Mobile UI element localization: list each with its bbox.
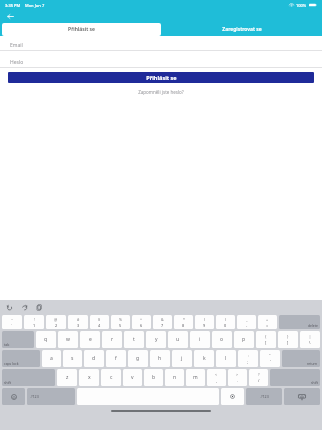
button[interactable]: @ [46, 315, 66, 329]
button[interactable]: t [124, 331, 144, 348]
button[interactable]: Hide keyboard [284, 388, 320, 405]
staticText: p [242, 336, 246, 343]
staticText: ( [204, 317, 206, 322]
staticText: o [220, 336, 224, 343]
staticText: Email [10, 42, 23, 49]
button[interactable]: _ [237, 315, 256, 329]
staticText: # [77, 317, 80, 322]
button[interactable]: z [57, 369, 77, 386]
button[interactable]: s [63, 350, 82, 367]
button[interactable]: j [172, 350, 192, 367]
staticText: c [110, 374, 113, 381]
button[interactable]: Undo [5, 303, 14, 312]
staticText: ] [287, 340, 289, 345]
button[interactable]: h [150, 350, 170, 367]
button[interactable]: q [36, 331, 56, 348]
staticText: Zaregistrovat se [222, 26, 262, 33]
button[interactable]: m [186, 369, 205, 386]
staticText: b [152, 374, 156, 381]
staticText: 4 [98, 323, 101, 328]
button[interactable]: b [144, 369, 163, 386]
button[interactable]: # [68, 315, 88, 329]
button[interactable]: Email [0, 41, 322, 51]
button[interactable]: caps lock [2, 350, 40, 367]
button[interactable]: Paste [35, 303, 44, 312]
button[interactable]: shift [2, 369, 55, 386]
staticText: f [115, 355, 117, 362]
button[interactable]: a [42, 350, 61, 367]
button[interactable]: .?123 [27, 388, 75, 405]
button[interactable]: % [111, 315, 130, 329]
button[interactable]: Heslo [0, 58, 322, 68]
button[interactable]: n [165, 369, 184, 386]
button[interactable]: ? [249, 369, 268, 386]
staticText: t [133, 336, 135, 343]
button[interactable]: : [238, 350, 258, 367]
button[interactable]: " [260, 350, 280, 367]
staticText: 7 [161, 323, 164, 328]
button[interactable]: $ [90, 315, 109, 329]
staticText: .?123 [30, 394, 39, 399]
button[interactable]: r [102, 331, 122, 348]
button[interactable]: < [207, 369, 226, 386]
button[interactable]: y [146, 331, 166, 348]
staticText: } [287, 334, 289, 339]
button[interactable]: Dictation [221, 388, 244, 405]
button[interactable]: ( [195, 315, 214, 329]
staticText: .?123 [260, 394, 269, 399]
staticText: 1 [33, 323, 36, 328]
staticText: ^ [140, 317, 143, 322]
button[interactable]: o [212, 331, 232, 348]
button[interactable]: k [194, 350, 214, 367]
staticText: return [307, 361, 318, 366]
staticText: caps lock [4, 361, 19, 366]
button[interactable]: ) [216, 315, 235, 329]
staticText: j [181, 355, 183, 362]
button[interactable]: g [128, 350, 148, 367]
button[interactable]: tab [2, 331, 34, 348]
button[interactable]: } [278, 331, 298, 348]
button[interactable]: c [101, 369, 121, 386]
staticText: @ [54, 317, 58, 322]
button[interactable]: Přihlásit se [8, 72, 314, 83]
button[interactable]: Zapomněli jste heslo? [134, 88, 188, 96]
button[interactable]: d [84, 350, 104, 367]
button[interactable]: shift [270, 369, 320, 386]
button[interactable]: v [123, 369, 142, 386]
staticText: d [92, 355, 96, 362]
button[interactable]: + [258, 315, 277, 329]
button[interactable]: delete [279, 315, 320, 329]
staticText: / [258, 378, 260, 383]
button[interactable]: * [174, 315, 193, 329]
button[interactable]: e [80, 331, 100, 348]
button[interactable]: Přihlásit se [2, 23, 161, 36]
staticText: i [199, 336, 201, 343]
staticText: 3:35 PM [5, 3, 21, 8]
button[interactable]: ~ [2, 315, 22, 329]
button[interactable]: p [234, 331, 254, 348]
staticText: e [89, 336, 92, 343]
button[interactable]: Zaregistrovat se [161, 22, 322, 36]
staticText: v [131, 374, 134, 381]
button[interactable]: return [282, 350, 320, 367]
staticText: " [269, 353, 271, 358]
button[interactable]: | [300, 331, 320, 348]
staticText: Zapomněli jste heslo? [138, 89, 184, 95]
button[interactable]: l [216, 350, 236, 367]
button[interactable]: { [256, 331, 276, 348]
button[interactable]: w [58, 331, 78, 348]
button[interactable]: x [79, 369, 99, 386]
button[interactable]: Redo [20, 303, 29, 312]
button[interactable]: f [106, 350, 126, 367]
button[interactable]: .?123 [246, 388, 282, 405]
button[interactable]: Emoji [2, 388, 25, 405]
button[interactable]: Back [3, 10, 17, 22]
button[interactable]: i [190, 331, 210, 348]
button[interactable]: u [168, 331, 188, 348]
staticText: ? [258, 372, 260, 377]
button[interactable]: & [153, 315, 172, 329]
button[interactable]: ^ [132, 315, 151, 329]
button[interactable]: > [228, 369, 247, 386]
button[interactable]: ! [24, 315, 44, 329]
